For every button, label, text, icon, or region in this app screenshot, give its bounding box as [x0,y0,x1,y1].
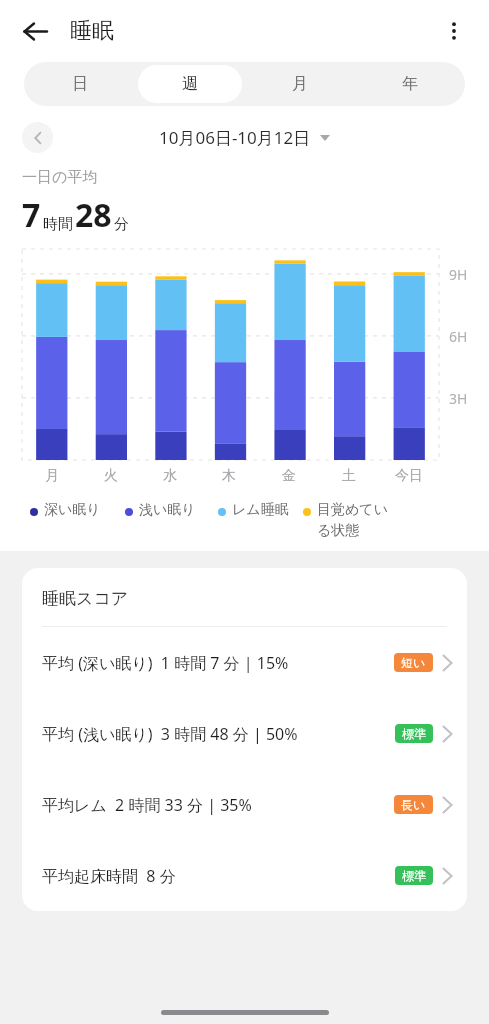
staticText: 月 [292,74,308,94]
staticText: 年 [402,74,418,94]
staticText: 深い眠り [44,501,101,519]
button[interactable]: 平均 (浅い眠り) 3 時間 48 分 | 50% [22,698,467,769]
staticText: 目覚めている状態 [317,501,393,539]
staticText: 日 [72,74,88,94]
staticText: 週 [182,74,198,94]
staticText: 火 [104,467,118,485]
button[interactable]: 日 [27,65,132,103]
staticText: 土 [342,467,356,485]
staticText: 水 [163,467,177,485]
staticText: 9H [449,265,468,284]
staticText: 睡眠 [70,17,114,45]
button[interactable]: 平均レム 2 時間 33 分 | 35% [22,769,467,840]
staticText: 木 [222,467,236,485]
staticText: 平均 (深い眠り) 1 時間 7 分 | 15% [42,652,394,674]
staticText: 平均 (浅い眠り) 3 時間 48 分 | 50% [42,723,395,745]
button[interactable]: 年 [358,65,462,103]
button[interactable]: 平均起床時間 8 分 [22,840,467,911]
button[interactable]: 週 [138,65,242,103]
staticText: 時間 [43,215,73,234]
staticText: 一日の平均 [22,168,98,187]
staticText: 6H [449,327,468,346]
button[interactable]: 平均 (深い眠り) 1 時間 7 分 | 15% [22,627,467,698]
staticText: 10月06日-10月12日 [159,126,311,149]
staticText: 浅い眠り [139,501,196,519]
staticText: 睡眠スコア [42,588,129,609]
staticText: 28 [75,193,112,237]
staticText: 平均起床時間 8 分 [42,865,395,887]
staticText: 月 [45,467,59,485]
staticText: 今日 [395,467,423,485]
button[interactable]: Back [12,8,58,54]
staticText: 標準 [402,868,426,883]
button[interactable]: 月 [248,65,352,103]
staticText: 7 [22,193,41,237]
button[interactable]: Previous week [22,122,53,153]
staticText: レム睡眠 [232,501,289,519]
button[interactable]: 10月06日-10月12日 [159,126,330,149]
button[interactable]: More options [431,8,477,54]
staticText: 平均レム 2 時間 33 分 | 35% [42,794,394,816]
staticText: 標準 [402,726,426,741]
staticText: 短い [401,655,426,670]
staticText: 分 [114,215,129,234]
staticText: 金 [282,467,296,485]
staticText: 長い [401,797,426,812]
staticText: 3H [449,389,468,408]
